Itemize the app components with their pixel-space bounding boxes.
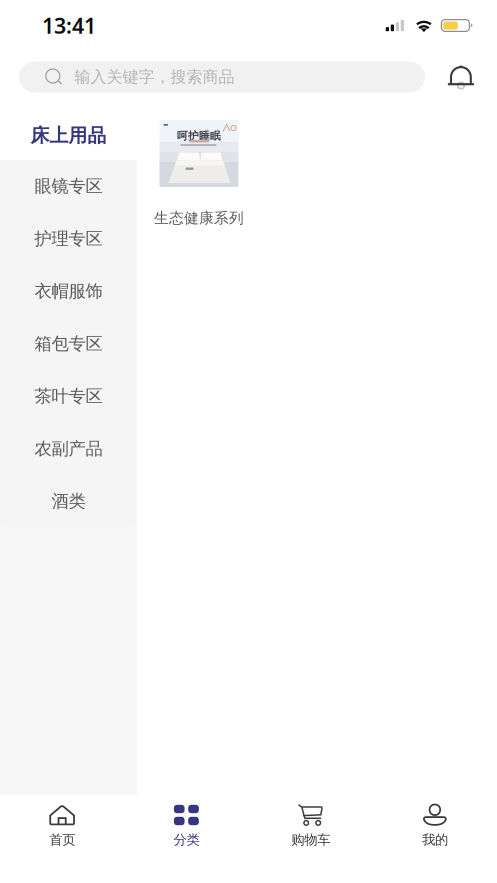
- staticText: 床上用品: [30, 124, 106, 147]
- staticText: 我的: [422, 831, 448, 848]
- button[interactable]: 农副产品: [0, 422, 137, 475]
- staticText: 农副产品: [34, 438, 102, 459]
- button[interactable]: 护理专区: [0, 212, 137, 265]
- button[interactable]: 通知: [439, 57, 483, 97]
- staticText: 生态健康系列: [154, 209, 244, 227]
- button[interactable]: 呵护睡眠: [139, 120, 259, 227]
- staticText: 呵护睡眠: [177, 129, 221, 142]
- staticText: 眼镜专区: [34, 176, 102, 197]
- button[interactable]: 衣帽服饰: [0, 265, 137, 317]
- button[interactable]: 购物车: [248, 795, 373, 883]
- staticText: 茶叶专区: [34, 386, 102, 407]
- button[interactable]: 输入关键字，搜索商品: [19, 61, 425, 92]
- button[interactable]: 茶叶专区: [0, 370, 137, 422]
- button[interactable]: 床上用品: [0, 103, 137, 160]
- staticText: 护理专区: [34, 228, 102, 249]
- button[interactable]: 箱包专区: [0, 317, 137, 370]
- staticText: 酒类: [51, 491, 85, 512]
- button[interactable]: 我的: [373, 795, 497, 883]
- staticText: 分类: [173, 831, 199, 848]
- button[interactable]: 首页: [0, 795, 124, 883]
- staticText: 衣帽服饰: [34, 281, 102, 302]
- staticText: 输入关键字，搜索商品: [74, 67, 234, 87]
- staticText: 购物车: [291, 831, 330, 848]
- button[interactable]: 分类: [124, 795, 248, 883]
- button[interactable]: 眼镜专区: [0, 160, 137, 212]
- staticText: 首页: [49, 831, 75, 848]
- staticText: 箱包专区: [34, 333, 102, 354]
- button[interactable]: 酒类: [0, 475, 137, 527]
- staticText: 13:41: [42, 11, 96, 40]
